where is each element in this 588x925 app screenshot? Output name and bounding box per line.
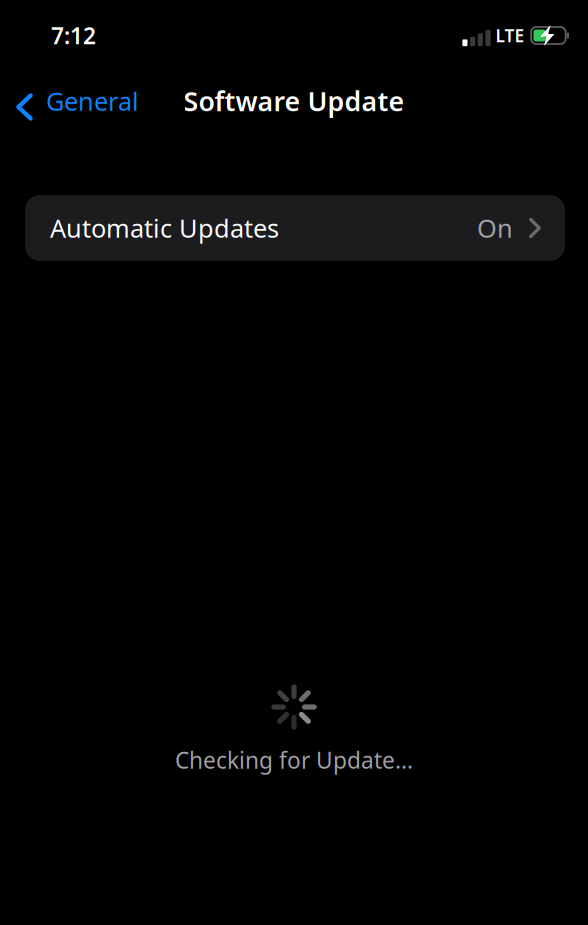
staticText: 7:12 [51, 20, 96, 50]
staticText: Software Update [183, 83, 404, 119]
staticText: On [477, 211, 513, 245]
staticText: General [46, 84, 139, 118]
button[interactable]: Back to General [0, 75, 149, 127]
button[interactable]: Automatic Updates [25, 195, 565, 261]
staticText: Checking for Update... [175, 745, 413, 775]
staticText: LTE [496, 24, 525, 47]
staticText: Automatic Updates [50, 211, 279, 245]
